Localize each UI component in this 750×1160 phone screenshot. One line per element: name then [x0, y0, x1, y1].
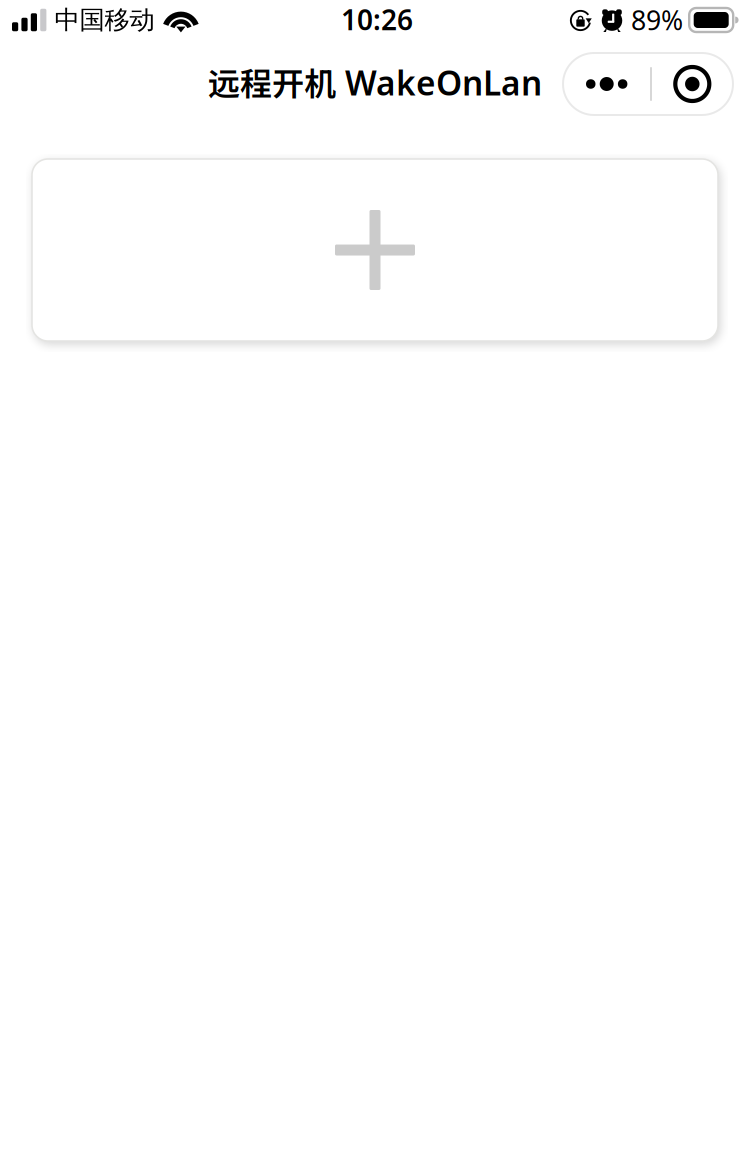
button[interactable]: More [563, 53, 650, 115]
staticText: 10:26 [341, 1, 413, 38]
staticText: 中国移动 [54, 4, 154, 35]
button[interactable]: Add device [32, 159, 718, 341]
staticText: WakeOnLan [336, 60, 542, 105]
staticText: 远程开机 [208, 58, 336, 105]
button[interactable]: Close mini program [652, 53, 733, 115]
staticText: 89% [631, 2, 683, 38]
